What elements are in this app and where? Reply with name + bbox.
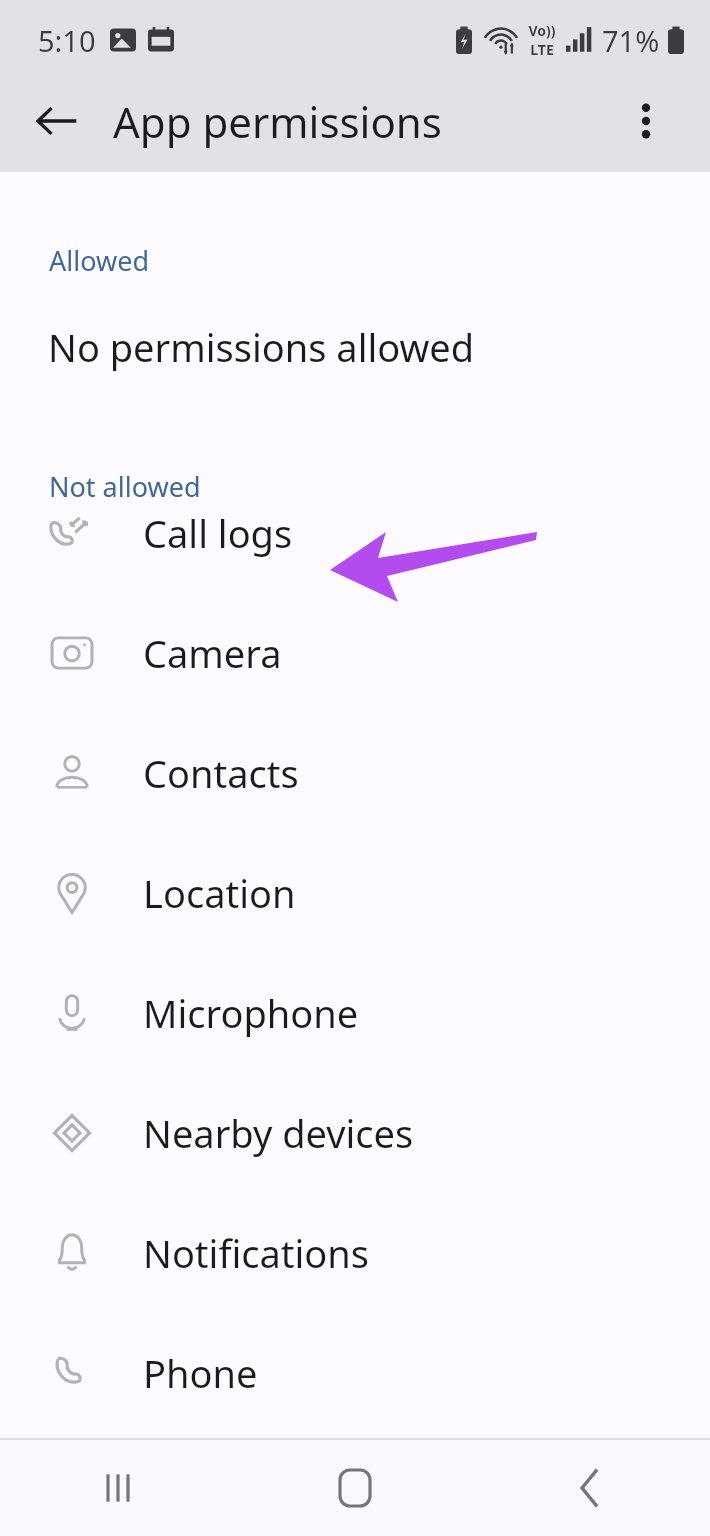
staticText: Contacts bbox=[143, 747, 299, 799]
staticText: Call logs bbox=[143, 507, 293, 559]
button[interactable]: Microphone bbox=[0, 953, 710, 1073]
staticText: App permissions bbox=[113, 93, 442, 150]
button[interactable]: Nearby devices bbox=[0, 1073, 710, 1193]
button[interactable]: Camera bbox=[0, 593, 710, 713]
button[interactable]: Notifications bbox=[0, 1193, 710, 1313]
button[interactable]: Location bbox=[0, 833, 710, 953]
staticText: Allowed bbox=[49, 242, 150, 279]
button[interactable]: More options bbox=[603, 78, 689, 164]
staticText: No permissions allowed bbox=[48, 321, 475, 373]
button[interactable]: Home bbox=[236, 1440, 473, 1536]
button[interactable]: Phone bbox=[0, 1313, 710, 1433]
button[interactable]: Navigate up bbox=[14, 78, 100, 164]
staticText: Nearby devices bbox=[143, 1107, 414, 1159]
button[interactable]: Recent apps bbox=[0, 1440, 236, 1536]
staticText: 71% bbox=[602, 21, 660, 60]
button[interactable]: Call logs bbox=[0, 473, 710, 593]
staticText: Vo)) bbox=[528, 21, 556, 40]
staticText: 5:10 bbox=[38, 21, 96, 60]
staticText: Phone bbox=[143, 1347, 258, 1399]
button[interactable]: Contacts bbox=[0, 713, 710, 833]
staticText: Microphone bbox=[143, 987, 359, 1039]
staticText: Not allowed bbox=[49, 468, 201, 505]
button[interactable]: Back bbox=[473, 1440, 710, 1536]
staticText: Notifications bbox=[143, 1227, 370, 1279]
staticText: Camera bbox=[143, 627, 282, 679]
staticText: Location bbox=[143, 867, 296, 919]
staticText: LTE bbox=[530, 40, 554, 59]
